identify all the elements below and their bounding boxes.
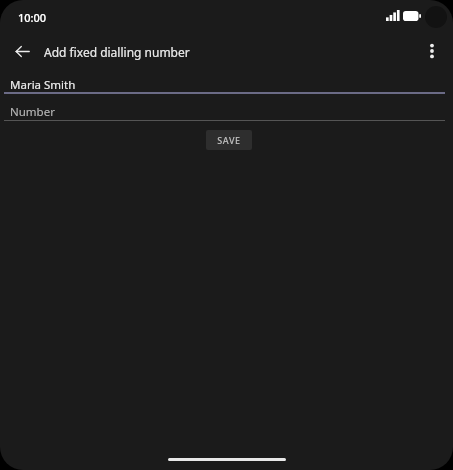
staticText: Number [10,104,55,120]
staticText: Maria Smith [10,77,76,93]
button[interactable]: Back [8,37,36,65]
staticText: 10:00 [18,10,47,25]
button[interactable]: SAVE [206,130,252,150]
staticText: Add fixed dialling number [44,44,190,60]
staticText: SAVE [217,134,241,146]
button[interactable]: Number [0,95,453,121]
button[interactable]: More options [418,37,446,65]
button[interactable]: Maria Smith [0,68,453,94]
